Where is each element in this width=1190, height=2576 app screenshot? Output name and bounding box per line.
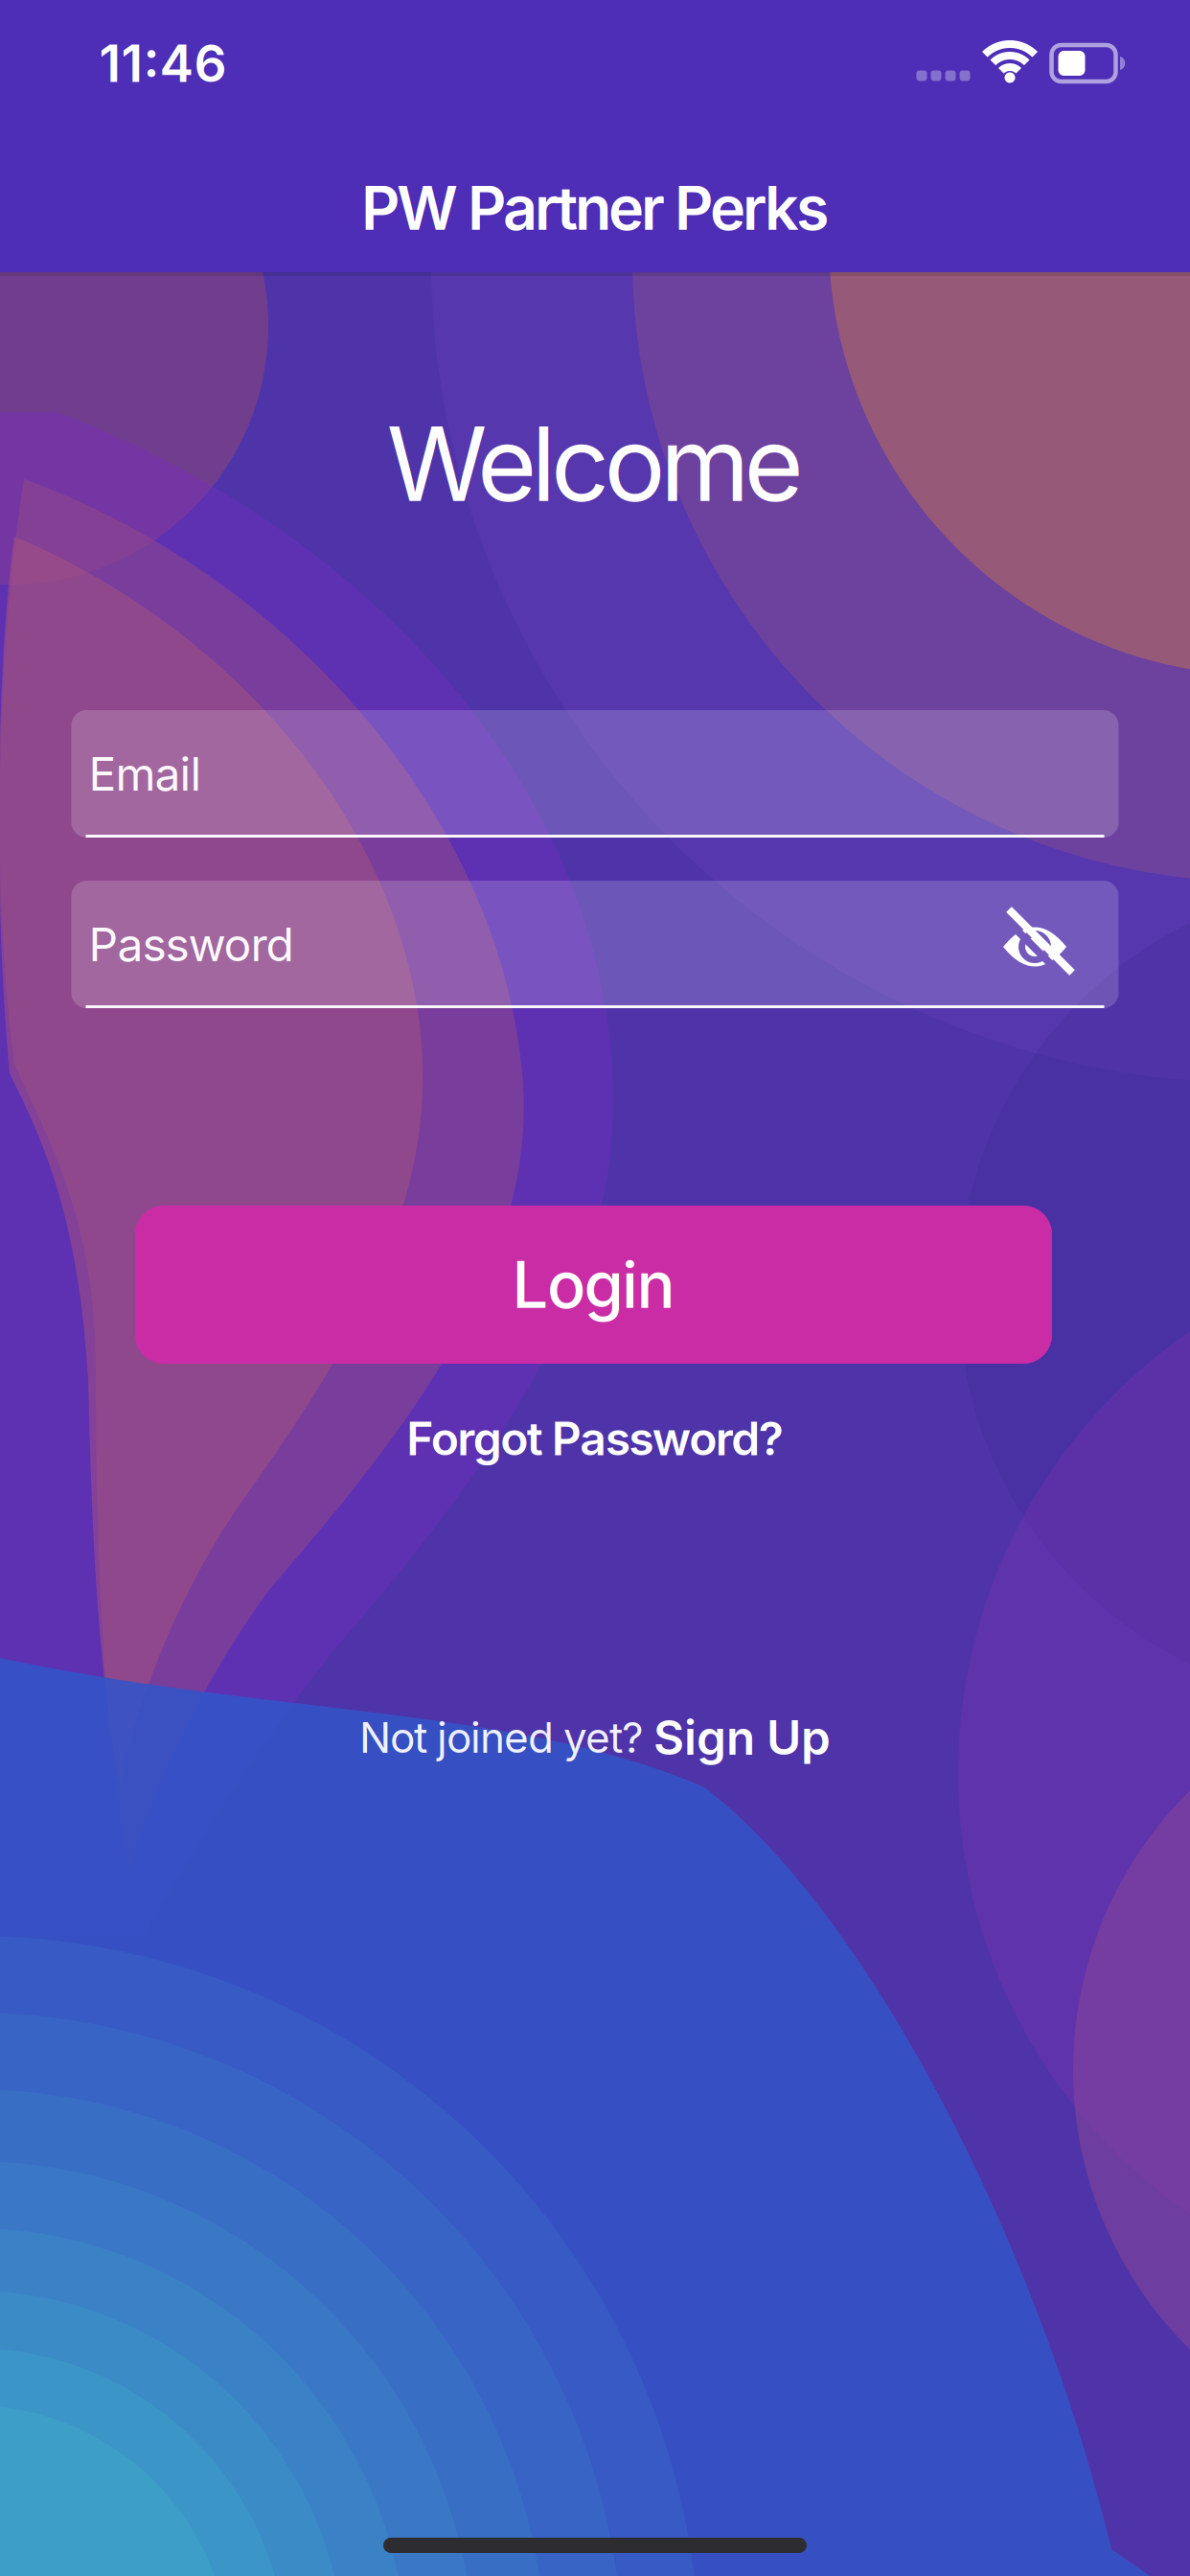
staticText: Not joined yet?	[359, 1713, 643, 1762]
staticText: Login	[512, 1247, 675, 1322]
staticText: Password	[89, 917, 294, 972]
staticText: 11:46	[99, 33, 227, 93]
staticText: PW Partner Perks	[361, 172, 829, 243]
staticText: Forgot Password?	[406, 1411, 783, 1466]
button[interactable]: Email	[71, 710, 1119, 838]
button[interactable]: Login	[135, 1206, 1052, 1364]
button[interactable]: Forgot Password?	[406, 1411, 783, 1466]
button[interactable]: Sign Up	[653, 1710, 831, 1765]
staticText: Email	[89, 747, 202, 801]
button[interactable]: Show password	[996, 908, 1073, 985]
button[interactable]: Password	[71, 881, 1119, 1008]
staticText: Sign Up	[653, 1710, 831, 1765]
staticText: Welcome	[387, 404, 803, 524]
